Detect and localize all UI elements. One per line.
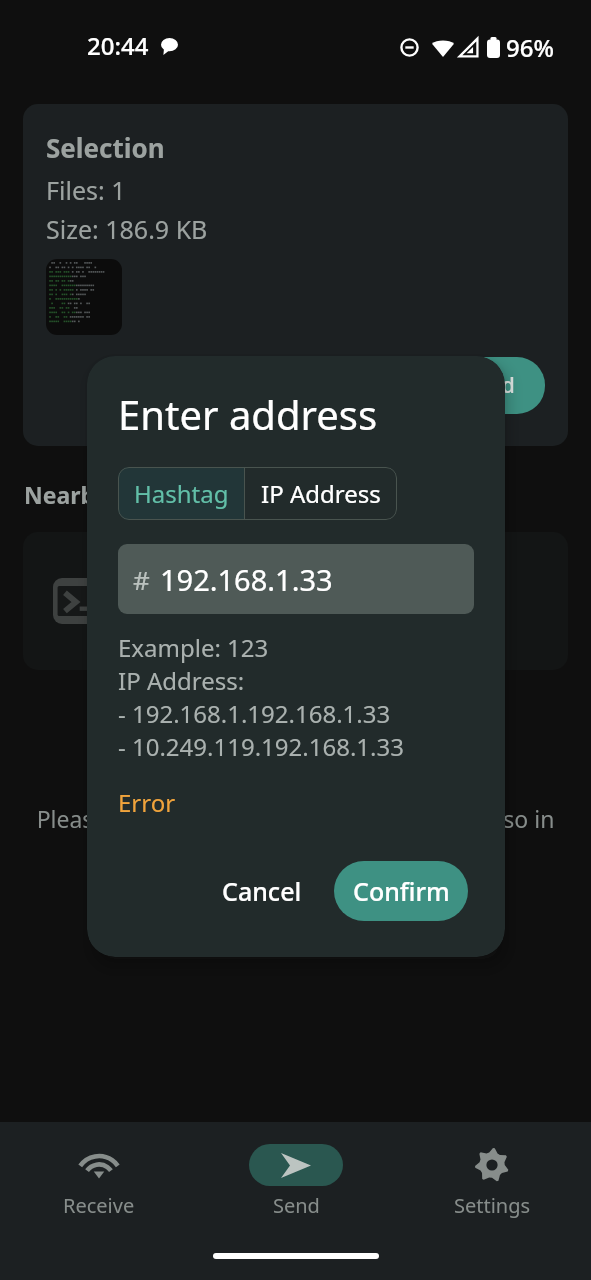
staticText: - 192.168.1.192.168.1.33: [118, 697, 391, 730]
staticText: Cancel: [222, 874, 302, 908]
staticText: Files: 1: [46, 173, 126, 207]
staticText: - 10.249.119.192.168.1.33: [118, 730, 404, 763]
button[interactable]: Selection: [23, 104, 568, 446]
staticText: Send: [273, 1192, 320, 1219]
other: Receive: [82, 1152, 116, 1179]
button[interactable]: Confirm: [334, 861, 468, 921]
button[interactable]: Terminal device: [23, 532, 568, 670]
button[interactable]: IP Address: [245, 467, 397, 520]
staticText: Selection: [46, 130, 165, 165]
button[interactable]: #: [118, 544, 474, 614]
button[interactable]: Hashtag: [118, 467, 244, 520]
staticText: Error: [118, 786, 176, 819]
other: Settings: [475, 1148, 509, 1182]
staticText: Add: [475, 371, 515, 400]
button[interactable]: Settings: [422, 1136, 562, 1221]
staticText: Confirm: [353, 874, 450, 908]
staticText: 192.168.1.33: [160, 560, 333, 599]
button[interactable]: Cancel: [204, 862, 320, 920]
staticText: #: [133, 562, 150, 597]
staticText: Size: 186.9 KB: [46, 212, 208, 246]
button[interactable]: Send: [226, 1136, 366, 1221]
other: Terminal device: [53, 578, 99, 624]
staticText: IP Address: [261, 477, 381, 510]
button[interactable]: Receive: [29, 1136, 169, 1221]
staticText: Enter address: [118, 387, 378, 441]
staticText: Receive: [63, 1192, 135, 1219]
staticText: Settings: [454, 1192, 531, 1219]
staticText: Hashtag: [134, 477, 229, 510]
staticText: Please make sure that the other device i…: [20, 803, 571, 868]
staticText: 20:44: [87, 29, 149, 62]
staticText: Example: 123: [118, 631, 269, 664]
staticText: Nearby: [24, 479, 108, 510]
staticText: IP Address:: [118, 664, 245, 697]
button[interactable]: Add: [445, 357, 545, 414]
staticText: 96%: [506, 31, 554, 64]
